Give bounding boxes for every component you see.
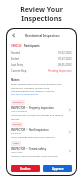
staticText: Participants [24, 44, 40, 48]
staticText: Enter detailed notes about area conditio… [11, 83, 62, 92]
staticText: Last Entry [11, 63, 24, 67]
button[interactable]: REVIEW [7, 121, 76, 140]
staticText: Check exterior surfaces for damage and c… [11, 114, 72, 120]
staticText: Pending Inspection [48, 69, 72, 73]
button[interactable]: Decline [11, 165, 40, 172]
staticText: 09-05-2023 [58, 63, 72, 67]
staticText: VEHICLE [11, 44, 22, 48]
button[interactable]: Current Step [7, 68, 76, 74]
staticText: INSPECTOR • Roof inspection [11, 128, 49, 132]
staticText: Unit 3 Building [11, 110, 27, 113]
staticText: REVIEW [13, 123, 21, 126]
button[interactable]: Started [7, 50, 76, 56]
staticText: Notes [11, 78, 20, 82]
button[interactable]: Back [10, 32, 17, 39]
staticText: Section B [11, 132, 21, 135]
staticText: Verify drainage paths and seal condition… [11, 136, 55, 139]
staticText: INSPECTOR • Property inspection [11, 106, 54, 110]
staticText: 07-07-2023 [58, 51, 72, 55]
staticText: Ended [11, 57, 19, 61]
staticText: Residential Inspection [25, 34, 60, 38]
button[interactable]: PENDING [7, 99, 76, 121]
staticText: Review Your Inspections [20, 5, 63, 23]
staticText: Started [11, 51, 20, 55]
staticText: Decline [20, 167, 31, 171]
staticText: 07-07-2023 [58, 57, 72, 61]
button[interactable]: Last Entry [7, 62, 76, 68]
staticText: OPEN [13, 142, 19, 145]
button[interactable]: Ended [7, 56, 76, 62]
button[interactable]: Approve [43, 165, 72, 172]
staticText: PENDING [13, 101, 23, 104]
staticText: Confirm alarms and egress routes are cle… [11, 155, 58, 158]
staticText: INSPECTOR • Tenant safety [11, 147, 47, 151]
staticText: Approve [52, 167, 64, 171]
button[interactable]: Edit site condition details [11, 93, 38, 96]
staticText: Main Level [11, 151, 23, 154]
staticText: Edit site condition details [11, 93, 38, 96]
staticText: Current Step [11, 69, 27, 73]
button[interactable]: OPEN [7, 140, 76, 159]
